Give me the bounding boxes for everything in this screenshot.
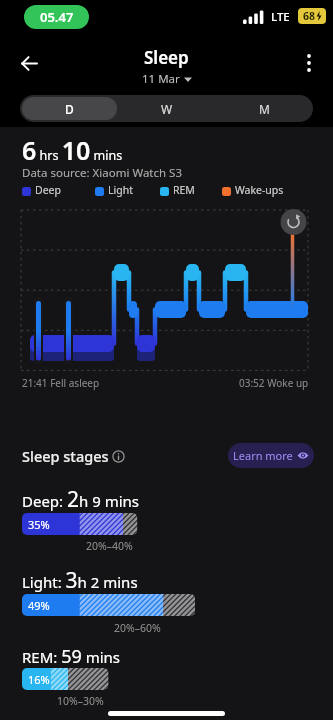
button[interactable] [12, 46, 46, 80]
staticText: 10%–30% [57, 694, 104, 708]
staticText: M [259, 101, 270, 117]
staticText: Sleep [144, 46, 189, 69]
staticText: Sleep stages [22, 446, 109, 466]
staticText: 11 Mar [142, 71, 180, 87]
staticText: 03:52 Woke up [239, 376, 309, 390]
staticText: Light: 3h 2 mins [22, 566, 138, 595]
staticText: REM [173, 183, 195, 197]
button[interactable]: Learn more [228, 443, 314, 468]
staticText: D [65, 101, 74, 117]
staticText: Deep: 2h 9 mins [22, 485, 140, 514]
staticText: W [161, 101, 173, 117]
staticText: 68 [303, 9, 316, 23]
staticText: 21:41 Fell asleep [22, 376, 100, 390]
button[interactable]: D [22, 97, 117, 120]
staticText: Wake-ups [235, 183, 284, 197]
staticText: 20%–60% [114, 621, 161, 635]
staticText: 49% [28, 598, 50, 613]
staticText: REM: 59 mins [22, 644, 121, 669]
button[interactable]: 11 Mar [142, 71, 192, 87]
staticText: 05.47 [40, 8, 74, 26]
button[interactable] [292, 46, 326, 80]
staticText: LTE [271, 9, 290, 25]
staticText: Light [108, 183, 133, 197]
button[interactable]: M [216, 95, 313, 122]
staticText: 20%–40% [86, 539, 133, 553]
staticText: Learn more [233, 448, 293, 463]
button[interactable]: W [118, 95, 216, 122]
staticText: Data source: Xiaomi Watch S3 [22, 165, 183, 181]
staticText: 16% [28, 672, 50, 687]
staticText: 35% [28, 517, 50, 532]
staticText: Deep [35, 183, 61, 197]
button[interactable]: 05.47 [24, 5, 89, 29]
staticText: 6 hrs 10 mins [22, 133, 123, 167]
